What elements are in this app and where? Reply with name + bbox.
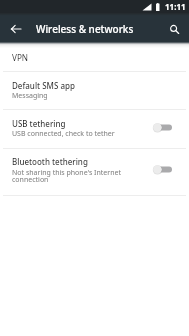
staticText: USB connected, check to tether	[12, 129, 115, 139]
button[interactable]: USB tethering	[0, 110, 189, 148]
button[interactable]: Back	[4, 17, 28, 41]
button[interactable]: Search	[162, 17, 186, 41]
staticText: 11:11	[165, 1, 186, 12]
staticText: Bluetooth tethering	[12, 156, 88, 167]
staticText: Default SMS app	[12, 80, 75, 91]
staticText: USB tethering	[12, 118, 66, 129]
staticText: connection	[12, 175, 49, 185]
staticText: Messaging	[12, 91, 48, 101]
staticText: VPN	[12, 52, 29, 63]
button[interactable]: VPN	[0, 43, 189, 71]
staticText: Not sharing this phone's Internet	[12, 168, 121, 178]
button[interactable]: Default SMS app	[0, 72, 189, 109]
button[interactable]: Bluetooth tethering	[0, 149, 189, 195]
staticText: Wireless & networks	[36, 22, 134, 36]
